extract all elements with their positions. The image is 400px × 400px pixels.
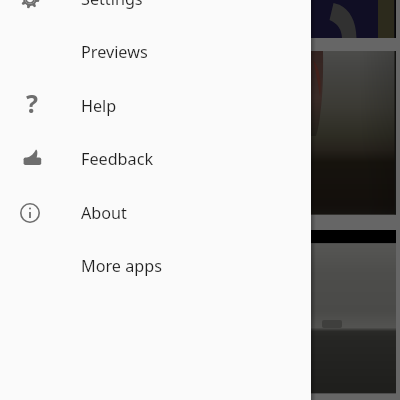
button[interactable]: Settings <box>0 0 311 25</box>
button[interactable]: More apps <box>0 239 311 292</box>
staticText: Help <box>81 95 117 117</box>
other: About <box>16 199 44 227</box>
staticText: More apps <box>81 255 162 277</box>
staticText: Feedback <box>81 148 154 170</box>
staticText: Previews <box>81 41 148 63</box>
button[interactable]: Help <box>0 79 311 132</box>
button[interactable]: Feedback <box>0 132 311 185</box>
other: Settings <box>16 0 44 13</box>
staticText: Settings <box>81 0 143 10</box>
button[interactable]: About <box>0 186 311 239</box>
staticText: About <box>81 202 127 224</box>
other: Feedback <box>16 145 44 173</box>
button[interactable]: Previews <box>0 25 311 78</box>
other: Help <box>16 92 44 120</box>
staticText: ? <box>26 86 38 114</box>
